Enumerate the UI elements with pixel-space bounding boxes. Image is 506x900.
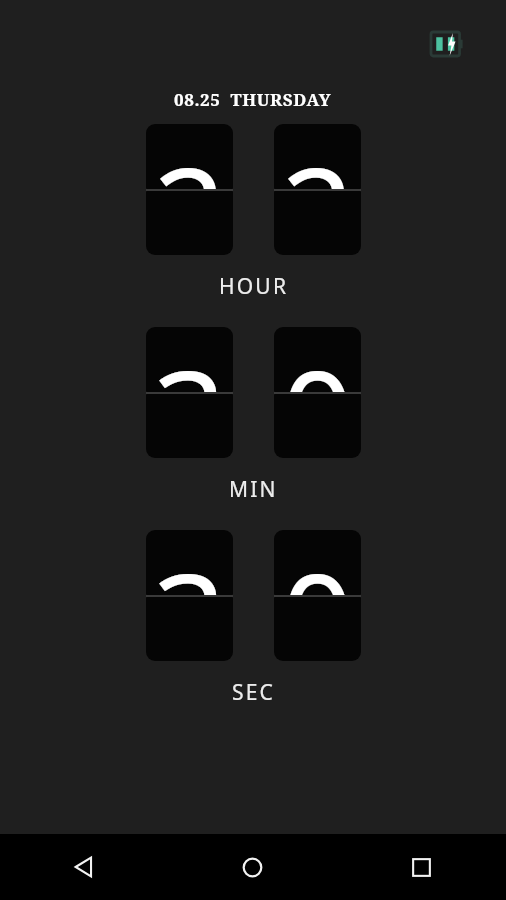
button[interactable]: Battery charging [426, 29, 470, 59]
staticText: 2 [274, 124, 361, 189]
staticText: SEC [232, 678, 276, 707]
staticText: 2 [146, 124, 233, 189]
button[interactable]: Digit 2 [274, 124, 361, 255]
button[interactable]: Home [168, 834, 337, 900]
button[interactable]: Digit 2 [146, 124, 233, 255]
staticText: 3 [146, 327, 233, 392]
staticText: 08.25 THURSDAY [174, 88, 332, 111]
button[interactable]: Digit 3 [146, 530, 233, 661]
staticText: HOUR [219, 272, 289, 301]
staticText: MIN [229, 475, 278, 504]
button[interactable]: Digit 3 [146, 327, 233, 458]
button[interactable]: Digit 0 [274, 530, 361, 661]
button[interactable]: Recent apps [337, 834, 506, 900]
button[interactable]: Back [0, 834, 168, 900]
staticText: 0 [274, 327, 361, 392]
staticText: 0 [274, 530, 361, 595]
staticText: 3 [146, 530, 233, 595]
button[interactable]: Digit 0 [274, 327, 361, 458]
